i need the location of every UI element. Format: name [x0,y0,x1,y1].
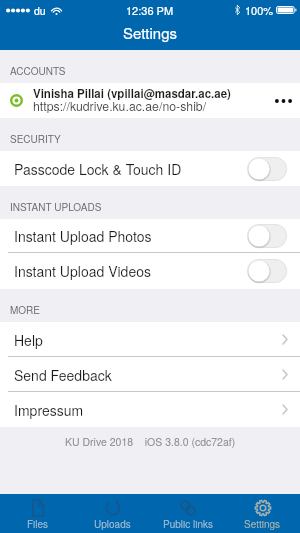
button[interactable]: Send Feedback [0,357,300,392]
staticText: Instant Upload Videos [14,261,151,281]
staticText: https://kudrive.ku.ac.ae/no-shib/ [33,97,207,115]
button[interactable]: Uploads [75,494,150,533]
staticText: Vinisha Pillai (vpillai@masdar.ac.ae) [33,85,231,101]
button[interactable]: Help [0,322,300,357]
staticText: Files [27,517,49,531]
staticText: Instant Upload Photos [14,226,152,246]
staticText: Send Feedback [14,365,112,385]
staticText: Settings [123,22,178,43]
button[interactable]: Vinisha Pillai (vpillai@masdar.ac.ae) [0,83,300,118]
button[interactable]: Impressum [0,392,300,427]
staticText: MORE [10,303,40,317]
button[interactable]: Passcode Lock & Touch ID [0,151,300,186]
button[interactable]: Public links [150,494,225,533]
button[interactable]: Instant Upload Videos [0,253,300,289]
staticText: 100% [245,2,274,18]
staticText: ACCOUNTS [10,64,66,78]
button[interactable]: More options [266,83,300,118]
staticText: INSTANT UPLOADS [10,200,102,214]
staticText: Passcode Lock & Touch ID [14,159,182,179]
staticText: du [34,3,46,18]
button[interactable]: Settings [225,494,300,533]
staticText: KU Drive 2018 iOS 3.8.0 (cdc72af) [65,434,236,449]
staticText: Public links [163,517,213,531]
staticText: Help [14,330,43,350]
staticText: SECURITY [10,132,61,146]
staticText: 12:36 PM [126,2,174,18]
staticText: Uploads [94,517,131,531]
staticText: Impressum [14,400,84,420]
staticText: Settings [244,517,281,531]
button[interactable]: Instant Upload Photos [0,219,300,253]
button[interactable]: Files [0,494,75,533]
